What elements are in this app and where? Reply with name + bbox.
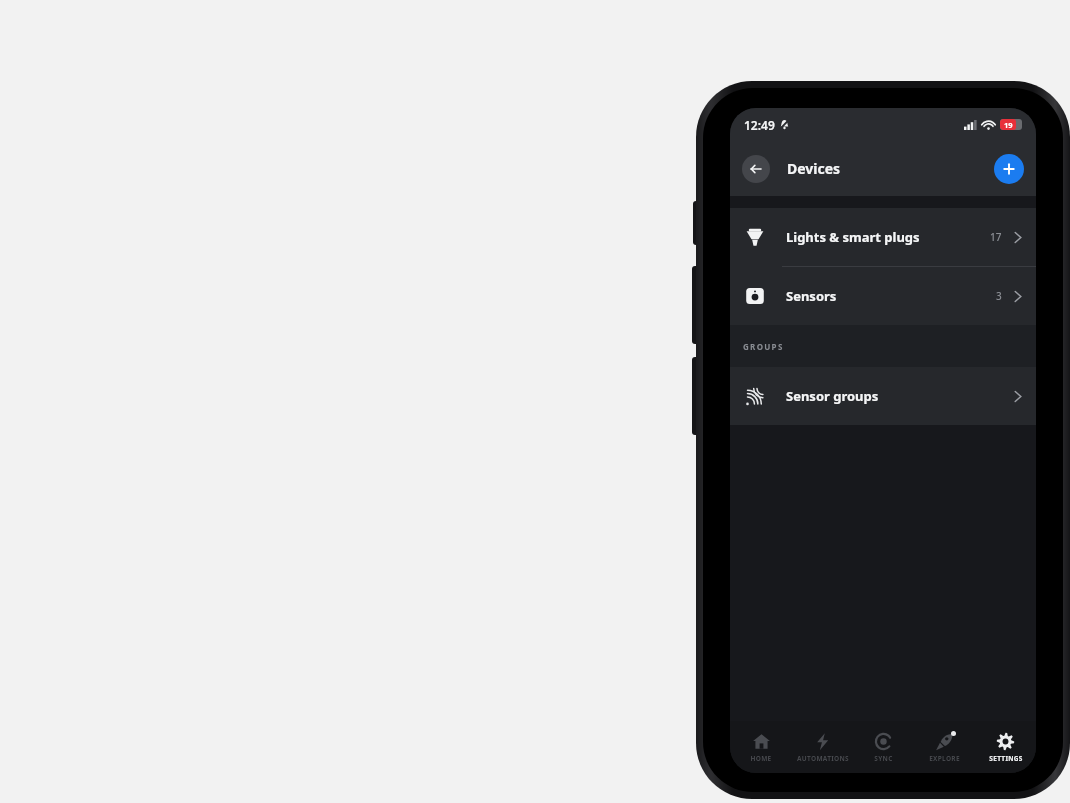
button[interactable]: HOME	[730, 721, 792, 773]
staticText: 19	[1004, 120, 1013, 130]
staticText: Sensor groups	[786, 387, 879, 405]
button[interactable]: SYNC	[853, 721, 914, 773]
staticText: 3	[996, 289, 1002, 303]
button[interactable]: AUTOMATIONS	[792, 721, 853, 773]
button[interactable]: Add device	[994, 154, 1024, 184]
button[interactable]: Sensors	[730, 267, 1036, 325]
staticText: GROUPS	[743, 341, 784, 352]
staticText: 12:49	[744, 117, 775, 133]
button[interactable]: EXPLORE	[914, 721, 975, 773]
staticText: Sensors	[786, 287, 837, 305]
button[interactable]: Back	[742, 155, 770, 183]
staticText: SETTINGS	[989, 754, 1023, 763]
button[interactable]: Lights & smart plugs	[730, 208, 1036, 266]
button[interactable]: Sensor groups	[730, 367, 1036, 425]
staticText: Lights & smart plugs	[786, 228, 920, 246]
button[interactable]: SETTINGS	[975, 721, 1036, 773]
staticText: 17	[990, 230, 1002, 244]
staticText: Devices	[787, 159, 841, 178]
staticText: AUTOMATIONS	[797, 754, 849, 763]
staticText: HOME	[750, 754, 772, 763]
staticText: SYNC	[874, 754, 893, 763]
staticText: EXPLORE	[929, 754, 960, 763]
